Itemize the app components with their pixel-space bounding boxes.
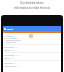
button[interactable] bbox=[3, 47, 61, 48]
button[interactable] bbox=[3, 66, 61, 67]
button[interactable] bbox=[3, 41, 61, 43]
button[interactable] bbox=[3, 55, 61, 56]
button[interactable]: Menu bbox=[3, 26, 61, 31]
staticText: information to make the best bbox=[0, 6, 64, 10]
button[interactable] bbox=[3, 37, 61, 39]
button[interactable] bbox=[3, 39, 61, 41]
button[interactable] bbox=[3, 50, 61, 51]
button[interactable] bbox=[3, 63, 61, 64]
button[interactable] bbox=[3, 35, 61, 37]
button[interactable] bbox=[3, 58, 61, 59]
staticText: Our detailed advice bbox=[0, 1, 64, 5]
